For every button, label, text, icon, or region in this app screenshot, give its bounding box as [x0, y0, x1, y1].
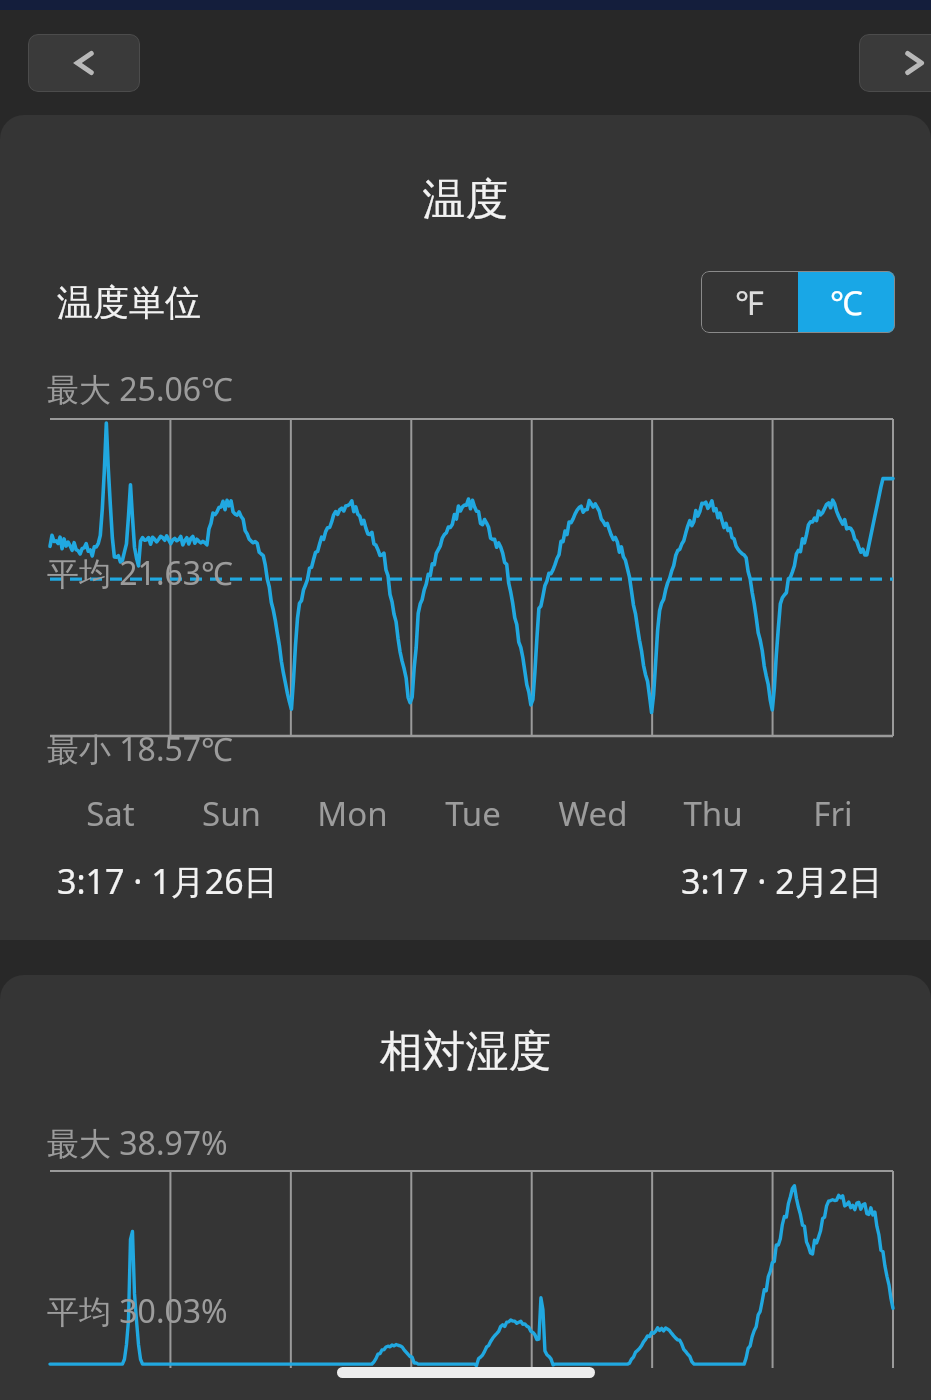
staticText: Fri [773, 791, 893, 836]
staticText: Thu [653, 791, 773, 836]
staticText: ℉ [735, 280, 764, 325]
button[interactable]: ℃ [798, 271, 895, 333]
staticText: 平均 30.03% [47, 1289, 228, 1333]
staticText: Tue [413, 791, 533, 836]
staticText: Sun [171, 791, 292, 836]
staticText: 3:17 · 1月26日 [57, 858, 278, 904]
staticText: ℃ [830, 280, 863, 325]
staticText: Mon [292, 791, 413, 836]
staticText: Sat [50, 791, 171, 836]
staticText: 最小 18.57℃ [47, 727, 233, 771]
staticText: 温度単位 [57, 280, 201, 325]
button[interactable]: Previous [28, 34, 140, 92]
button[interactable]: Next [859, 34, 931, 92]
staticText: 相対湿度 [0, 1025, 931, 1079]
staticText: 平均 21.63℃ [47, 551, 233, 595]
staticText: 3:17 · 2月2日 [681, 858, 883, 904]
staticText: 最大 38.97% [47, 1121, 228, 1165]
button[interactable]: 温度 [0, 115, 931, 940]
button[interactable]: 相対湿度 [0, 975, 931, 1400]
button[interactable]: ℉ [701, 271, 798, 333]
staticText: 最大 25.06℃ [47, 367, 233, 411]
staticText: Wed [533, 791, 653, 836]
staticText: 温度 [0, 173, 931, 227]
